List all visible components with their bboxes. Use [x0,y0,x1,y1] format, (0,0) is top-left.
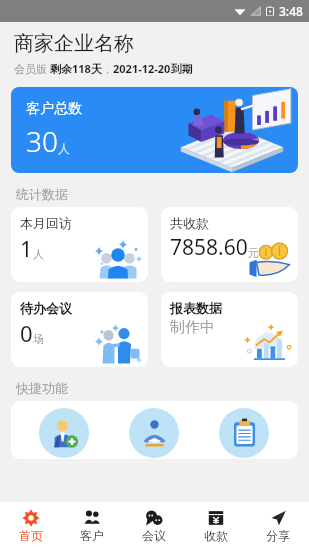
button[interactable]: 客户 [61,502,123,550]
staticText: 统计数据 [16,186,68,202]
staticText: ， [102,62,113,76]
staticText: 会议 [142,528,166,543]
button[interactable]: 首页 [0,502,61,550]
staticText: 0 [20,318,33,348]
staticText: 制作中 [170,318,215,337]
button[interactable]: 分享 [247,502,309,550]
button[interactable]: 共收款 [161,207,298,282]
staticText: 人 [33,247,44,261]
button[interactable]: 报表 [219,408,269,458]
staticText: 待办会议 [20,300,72,316]
staticText: 3:48 [279,3,303,19]
staticText: 共收款 [170,215,209,231]
staticText: 剩余118天 [50,61,102,76]
button[interactable]: 报表数据 [161,292,298,367]
button[interactable]: 收款 [185,502,247,550]
button[interactable]: 待办会议 [11,292,148,367]
staticText: 商家企业名称 [14,31,134,56]
staticText: 本月回访 [20,215,72,231]
staticText: 2021-12-20到期 [113,61,193,76]
staticText: 人 [58,141,70,156]
staticText: 30 [26,122,58,160]
button[interactable]: 发起会议 [129,408,179,458]
staticText: 报表数据 [170,300,222,316]
staticText: 1 [20,233,33,263]
button[interactable]: 本月回访 [11,207,148,282]
button[interactable]: 添加客户 [39,408,89,458]
staticText: 7858.60 [170,233,248,262]
staticText: 场 [33,332,44,346]
staticText: 元 [248,246,259,260]
staticText: 快捷功能 [16,380,68,396]
staticText: 收款 [204,528,228,543]
staticText: 会员版 [14,61,50,76]
staticText: 首页 [19,528,43,543]
staticText: 分享 [266,528,290,543]
button[interactable]: 会议 [123,502,185,550]
staticText: 客户总数 [26,100,82,118]
staticText: 客户 [80,528,104,543]
button[interactable]: 客户总数 [11,87,298,173]
